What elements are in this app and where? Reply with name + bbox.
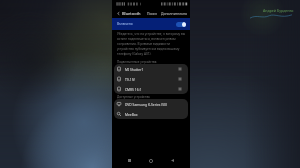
button[interactable]: DVD Samsung K-Series (50) xyxy=(114,99,188,109)
staticText: DVD Samsung K-Series (50) xyxy=(125,102,167,106)
button[interactable]: Включено xyxy=(112,18,190,30)
staticText: Андрей Бурденко xyxy=(263,8,294,13)
button[interactable]: T9-15f xyxy=(114,74,188,84)
button[interactable]: Поиск xyxy=(147,11,158,16)
button[interactable]: MI Shutter1 xyxy=(114,64,188,74)
button[interactable]: MeeBox xyxy=(114,109,188,119)
staticText: Включено xyxy=(117,22,133,26)
staticText: Убедитесь, что на устройстве, к которому… xyxy=(117,32,187,56)
staticText: T9-15f xyxy=(125,77,135,81)
staticText: Подключенные устройства xyxy=(117,60,157,64)
staticText: MeeBox xyxy=(125,112,138,116)
button[interactable]: CMR5 16:1 xyxy=(114,84,188,94)
staticText: Доступные устройства xyxy=(117,95,150,99)
button[interactable]: Device settings xyxy=(177,66,183,72)
staticText: Bluetooth xyxy=(122,11,141,16)
button[interactable]: Home xyxy=(146,156,155,165)
button[interactable]: Recent apps xyxy=(125,156,134,165)
button[interactable]: Дополнительно xyxy=(161,11,188,16)
button[interactable]: Device settings xyxy=(177,76,183,82)
button[interactable]: Back xyxy=(168,156,177,165)
button[interactable]: Back xyxy=(114,8,122,18)
staticText: MI Shutter1 xyxy=(125,67,144,71)
button[interactable]: Device settings xyxy=(177,86,183,92)
staticText: CMR5 16:1 xyxy=(125,87,142,91)
